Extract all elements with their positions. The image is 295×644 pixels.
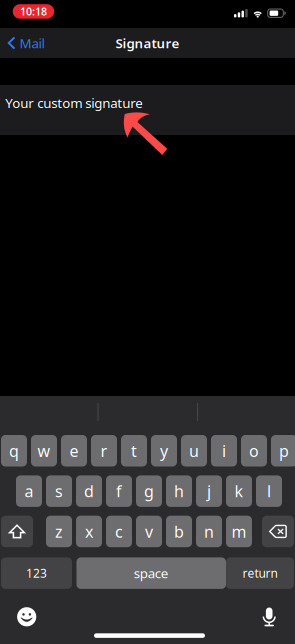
button[interactable]: x (76, 516, 102, 547)
button[interactable]: w (31, 435, 57, 466)
staticText: k (234, 480, 243, 502)
staticText: r (100, 440, 107, 461)
button[interactable]: k (226, 475, 252, 507)
staticText: y (160, 440, 168, 461)
button[interactable]: o (241, 435, 267, 466)
button[interactable]: b (166, 516, 192, 547)
staticText: u (189, 440, 199, 461)
staticText: d (84, 480, 94, 502)
staticText: l (267, 480, 271, 502)
button[interactable]: a (16, 475, 42, 507)
staticText: n (204, 521, 214, 542)
button[interactable]: h (166, 475, 192, 507)
button[interactable]: v (136, 516, 162, 547)
staticText: i (222, 440, 226, 461)
button[interactable]: i (211, 435, 237, 466)
button[interactable]: Delete (262, 516, 294, 547)
staticText: v (145, 521, 153, 542)
button[interactable]: Your custom signature (0, 85, 295, 135)
button[interactable]: f (106, 475, 132, 507)
button[interactable]: 123 (1, 557, 72, 589)
staticText: q (9, 440, 19, 461)
button[interactable]: e (61, 435, 87, 466)
staticText: 10:18 (20, 4, 47, 19)
staticText: f (116, 480, 122, 502)
button[interactable]: t (121, 435, 147, 466)
button[interactable]: u (181, 435, 207, 466)
button[interactable]: c (106, 516, 132, 547)
staticText: h (174, 480, 184, 502)
staticText: return (242, 565, 277, 581)
button[interactable]: l (256, 475, 282, 507)
button[interactable]: y (151, 435, 177, 466)
staticText: m (231, 521, 246, 542)
staticText: s (55, 480, 63, 502)
staticText: w (37, 440, 50, 461)
staticText: Mail (19, 34, 44, 52)
staticText: g (144, 480, 154, 502)
button[interactable]: n (196, 516, 222, 547)
button[interactable]: r (91, 435, 117, 466)
button[interactable]: Shift (1, 516, 33, 547)
staticText: a (24, 480, 33, 502)
button[interactable]: m (226, 516, 252, 547)
button[interactable]: Dictate (260, 607, 278, 627)
button[interactable]: Mail (0, 28, 50, 58)
staticText: p (279, 440, 289, 461)
button[interactable]: q (1, 435, 27, 466)
staticText: e (69, 440, 78, 461)
staticText: b (174, 521, 184, 542)
staticText: x (85, 521, 93, 542)
staticText: o (249, 440, 259, 461)
staticText: space (134, 564, 169, 582)
button[interactable]: j (196, 475, 222, 507)
staticText: j (207, 480, 211, 502)
button[interactable]: Emoji keyboard (17, 607, 36, 626)
staticText: c (115, 521, 123, 542)
staticText: 123 (26, 565, 47, 581)
button[interactable]: z (46, 516, 72, 547)
button[interactable]: g (136, 475, 162, 507)
button[interactable]: p (271, 435, 295, 466)
staticText: z (55, 521, 63, 542)
button[interactable]: s (46, 475, 72, 507)
button[interactable]: d (76, 475, 102, 507)
staticText: Your custom signature (5, 94, 143, 112)
button[interactable]: return (226, 557, 294, 589)
staticText: t (131, 440, 137, 461)
staticText: Signature (115, 34, 179, 52)
button[interactable]: space (76, 557, 226, 589)
